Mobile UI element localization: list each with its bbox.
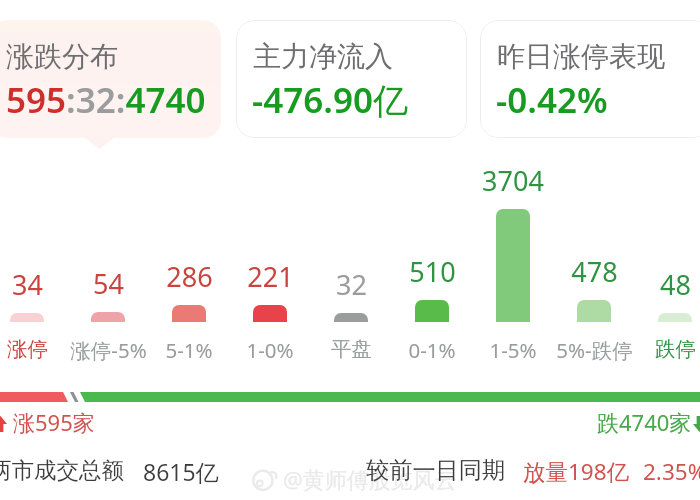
staticText: 32 bbox=[336, 266, 367, 303]
staticText: -0.42% bbox=[496, 76, 608, 124]
staticText: 昨日涨停表现 bbox=[497, 39, 665, 74]
staticText: 595:32:4740 bbox=[6, 76, 206, 124]
staticText: 放量198亿 bbox=[523, 456, 630, 487]
staticText: 48 bbox=[660, 266, 691, 303]
button[interactable]: Declining stocks bbox=[693, 416, 700, 432]
staticText: 2.35% bbox=[643, 456, 700, 487]
staticText: 34 bbox=[12, 266, 43, 303]
staticText: 8615亿 bbox=[143, 456, 219, 487]
staticText: 1-0% bbox=[246, 336, 294, 364]
staticText: 平盘 bbox=[331, 336, 372, 362]
staticText: 286 bbox=[166, 258, 213, 295]
button[interactable]: 主力净流入 bbox=[236, 20, 467, 138]
staticText: 54 bbox=[93, 265, 124, 302]
staticText: 5%-跌停 bbox=[556, 336, 633, 364]
staticText: 主力净流入 bbox=[253, 39, 393, 74]
staticText: 478 bbox=[571, 253, 618, 290]
staticText: 涨595家 bbox=[13, 407, 95, 437]
staticText: -476.90亿 bbox=[252, 76, 408, 124]
staticText: 221 bbox=[247, 258, 294, 295]
staticText: 0-1% bbox=[408, 336, 456, 364]
staticText: 涨停 bbox=[7, 336, 48, 362]
staticText: 跌4740家 bbox=[597, 407, 692, 437]
staticText: 5-1% bbox=[165, 336, 213, 364]
staticText: 涨跌分布 bbox=[6, 39, 118, 74]
staticText: 两市成交总额 bbox=[0, 456, 124, 484]
staticText: 3704 bbox=[482, 162, 544, 199]
staticText: 1-5% bbox=[489, 336, 537, 364]
staticText: 涨停-5% bbox=[70, 336, 147, 364]
button[interactable]: 涨跌分布 bbox=[0, 20, 221, 138]
button[interactable]: Advancing stocks bbox=[0, 416, 7, 432]
staticText: 较前一日同期 bbox=[366, 456, 506, 485]
staticText: @黄师傅股览风云 bbox=[283, 464, 457, 494]
staticText: 跌停 bbox=[655, 336, 696, 362]
staticText: 510 bbox=[409, 253, 456, 290]
button[interactable]: 昨日涨停表现 bbox=[480, 20, 700, 138]
